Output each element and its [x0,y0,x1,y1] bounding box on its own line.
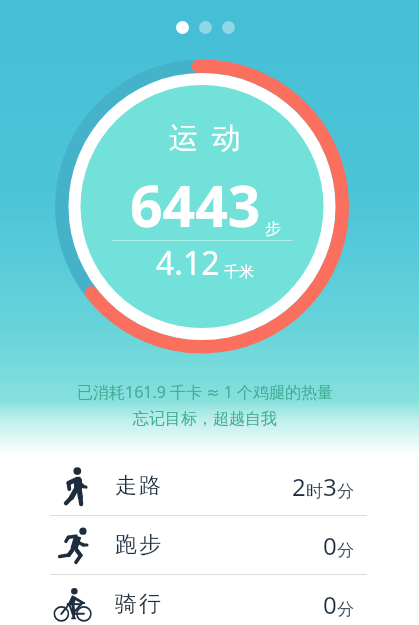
other: 走路 [53,464,95,508]
staticText: 千米 [224,263,254,282]
staticText: 走路 [114,472,162,500]
staticText: 跑步 [114,531,162,559]
staticText: 4.12 [156,241,220,285]
staticText: 骑行 [114,590,162,618]
staticText: 分 [337,481,354,502]
staticText: 3 [323,470,337,503]
staticText: 2 [292,470,306,503]
staticText: 忘记目标，超越自我 [133,409,277,429]
button[interactable]: 骑行 [0,575,419,625]
button[interactable]: 走路 [0,457,419,515]
staticText: 分 [337,540,354,561]
staticText: 时 [306,481,323,502]
other: 跑步 [53,523,95,567]
staticText: 运 [169,120,198,157]
button[interactable]: 跑步 [0,516,419,574]
staticText: 分 [337,599,354,620]
other: 骑行 [53,582,95,625]
staticText: 步 [265,219,281,239]
staticText: 0 [323,529,337,562]
staticText: 0 [323,588,337,621]
other: Page indicator [176,21,235,34]
staticText: 动 [212,120,241,157]
staticText: 已消耗161.9 千卡 ≈ 1 个鸡腿的热量 [77,381,334,403]
staticText: 6443 [130,166,261,244]
